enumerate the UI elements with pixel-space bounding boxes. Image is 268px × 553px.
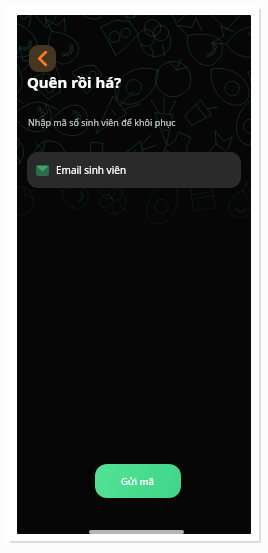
- button[interactable]: Email sinh viên: [27, 152, 241, 188]
- staticText: Nhập mã số sinh viên để khôi phục: [28, 116, 176, 128]
- staticText: Email sinh viên: [56, 163, 127, 177]
- staticText: Quên rồi há?: [27, 72, 122, 92]
- staticText: Gửi mã: [121, 475, 155, 488]
- button[interactable]: Back: [29, 45, 56, 72]
- button[interactable]: Gửi mã: [95, 464, 181, 498]
